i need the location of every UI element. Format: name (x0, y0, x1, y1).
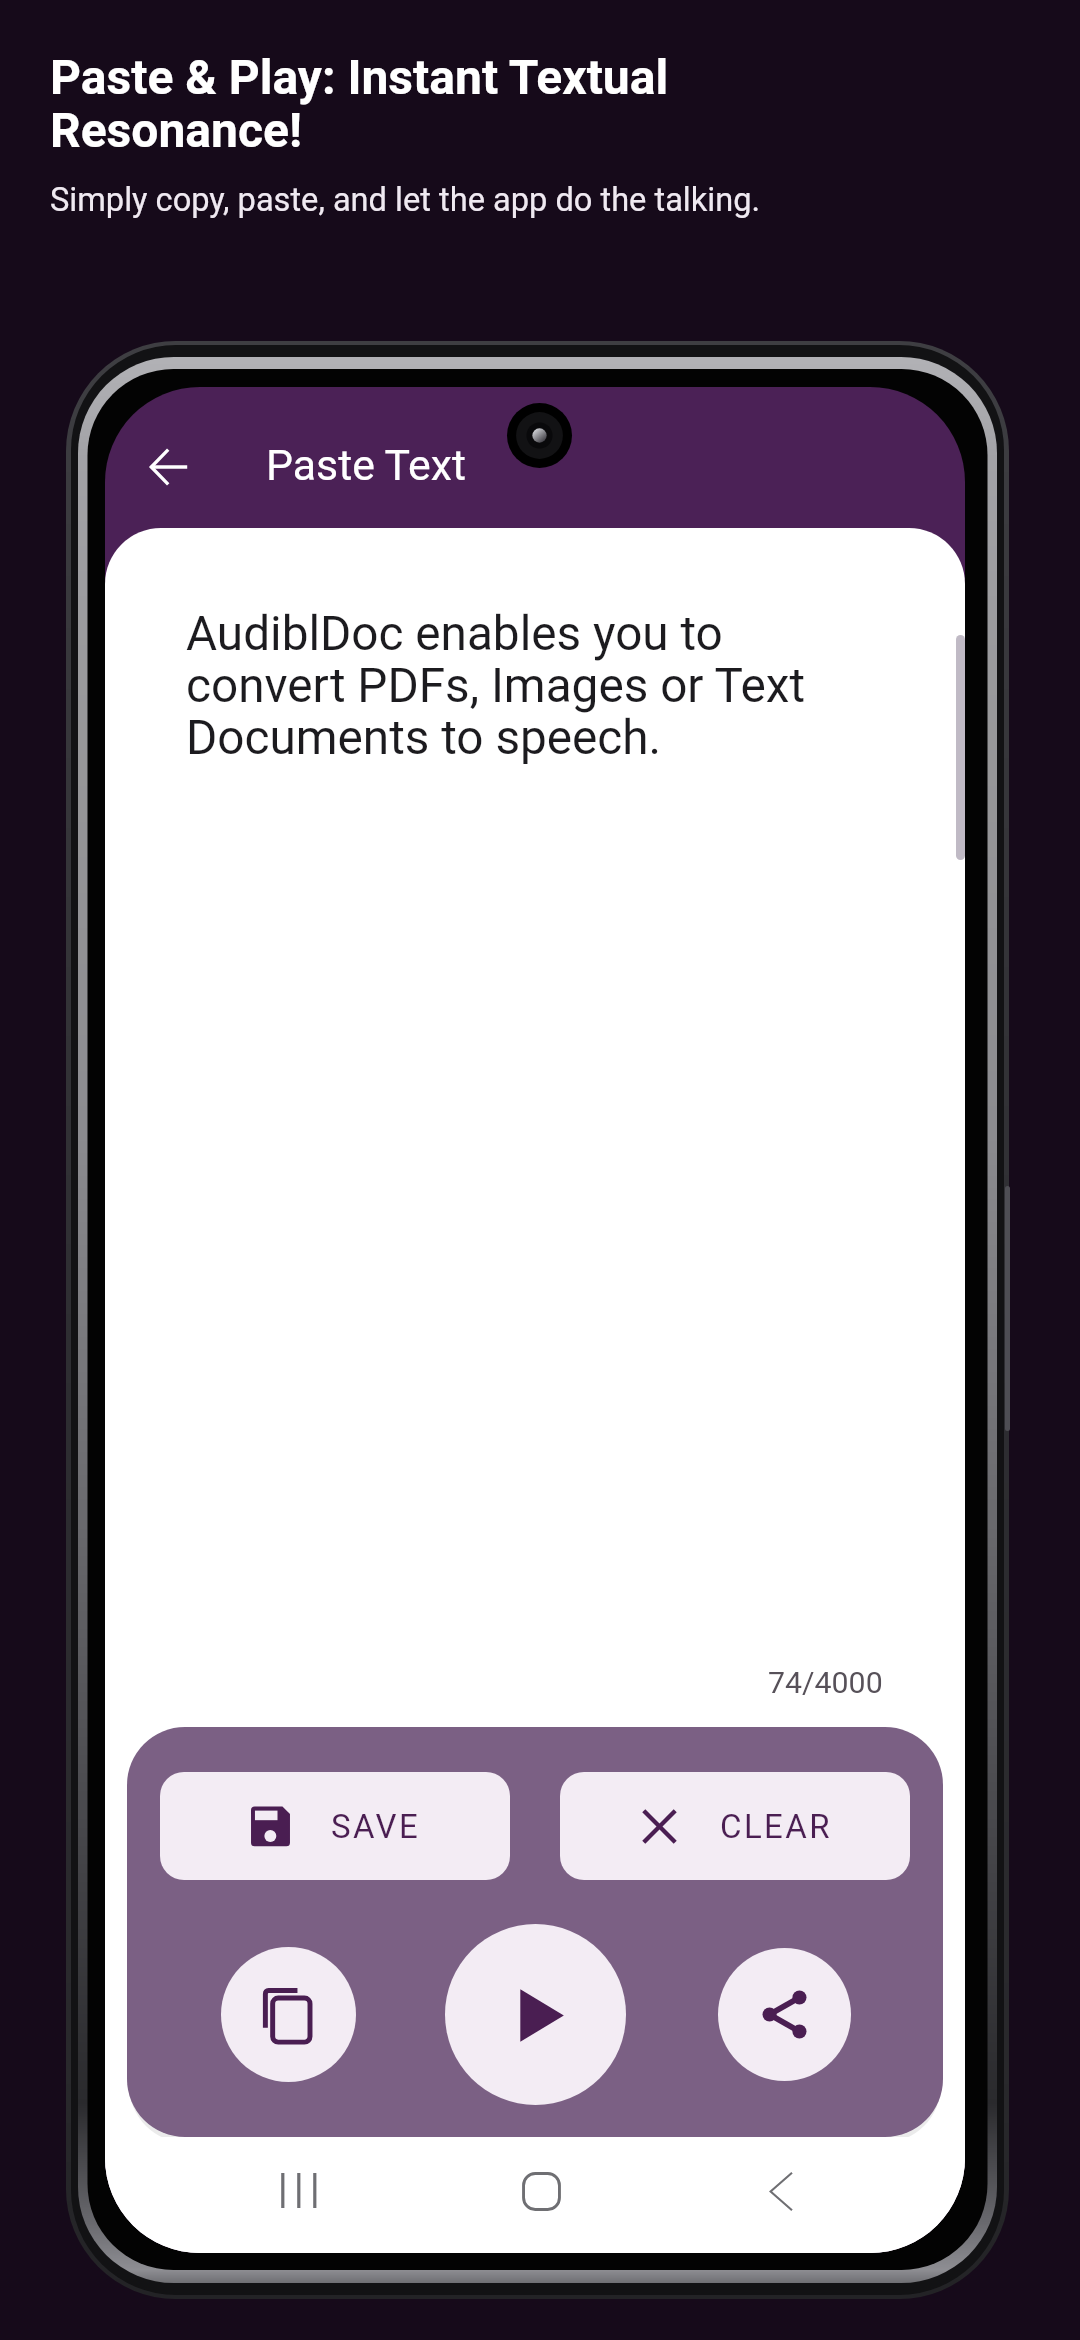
button[interactable]: Home (506, 2156, 576, 2226)
button[interactable]: SAVE (160, 1772, 510, 1880)
staticText: SAVE (331, 1807, 421, 1846)
staticText: CLEAR (720, 1807, 832, 1846)
staticText: Paste & Play: Instant Textual Resonance! (50, 49, 669, 159)
button[interactable]: Share (718, 1948, 851, 2081)
staticText: Simply copy, paste, and let the app do t… (50, 181, 761, 219)
button[interactable]: Back (126, 424, 212, 510)
staticText: Paste Text (266, 440, 467, 490)
staticText: AudiblDoc enables you to convert PDFs, I… (186, 606, 825, 766)
staticText: 74/4000 (768, 1665, 883, 1701)
button[interactable]: Back (746, 2156, 816, 2226)
button[interactable]: Recents (264, 2156, 334, 2226)
button[interactable]: CLEAR (560, 1772, 910, 1880)
button[interactable]: Play (445, 1924, 626, 2105)
button[interactable]: Copy (221, 1947, 356, 2082)
